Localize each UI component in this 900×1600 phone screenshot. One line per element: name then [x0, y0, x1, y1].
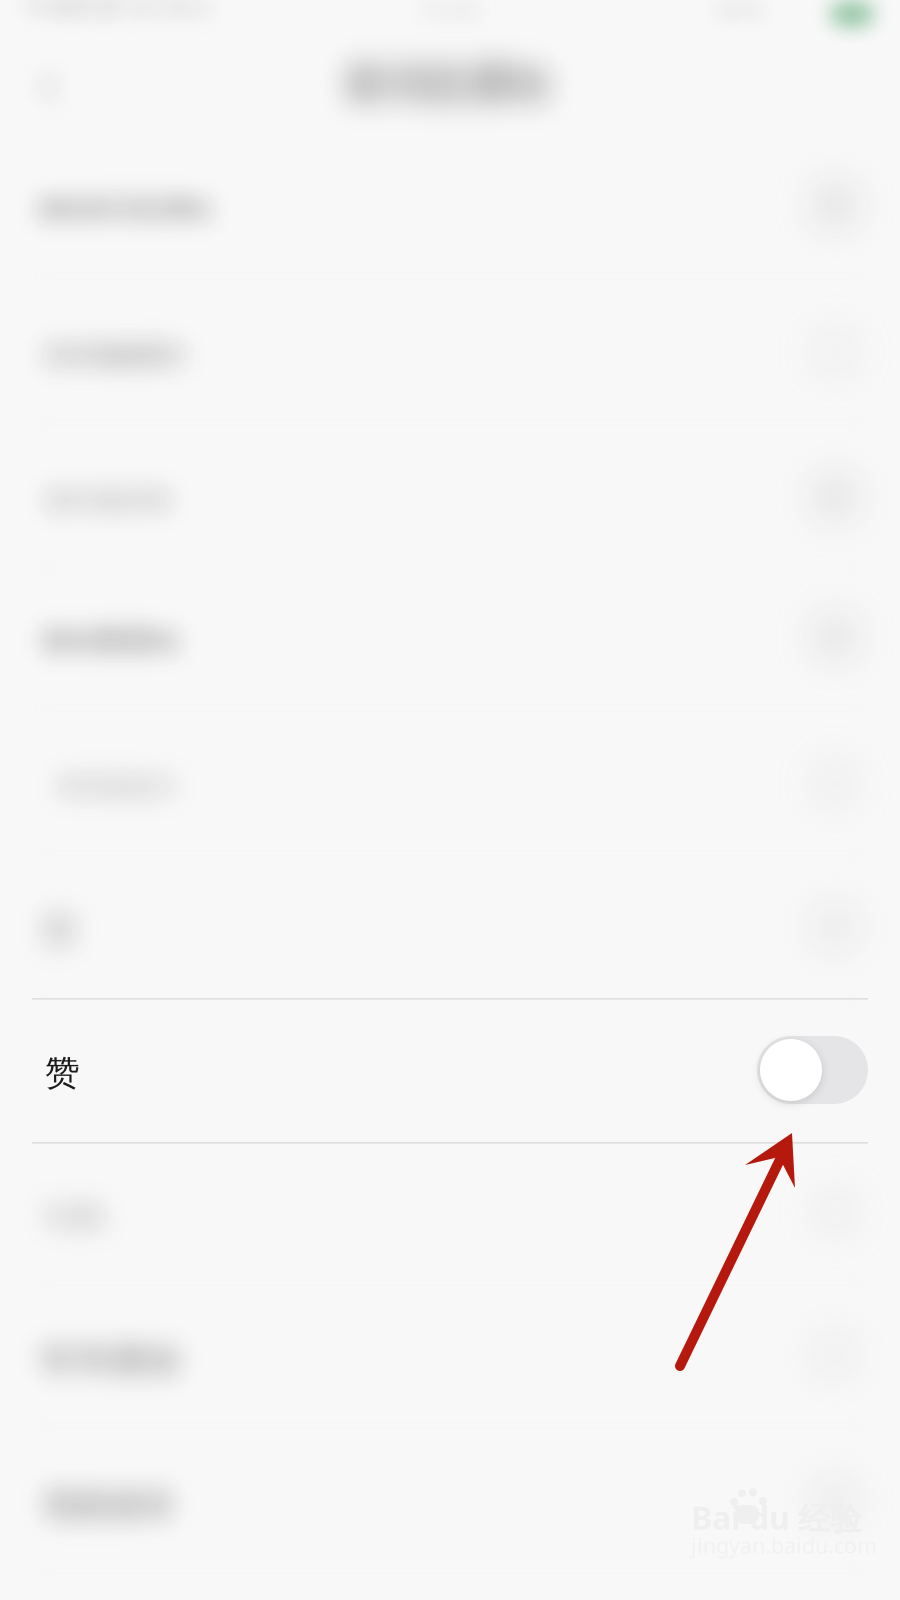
button[interactable]: 转账 [0, 1139, 900, 1284]
button[interactable]: 语音视频通话 [0, 279, 900, 424]
button[interactable]: 听筒播放 [0, 1282, 900, 1427]
button[interactable]: 接收新消息通知 [0, 132, 900, 277]
button[interactable]: 赞 [0, 998, 900, 1142]
button[interactable]: 朋友圈通知 [0, 564, 900, 709]
button[interactable]: 视频邀请 [0, 1427, 900, 1572]
button[interactable]: 赞 [0, 854, 900, 999]
staticText: 赞 [45, 1052, 80, 1094]
staticText: du 经验 [749, 1496, 862, 1539]
staticText: Bai [691, 1496, 741, 1538]
